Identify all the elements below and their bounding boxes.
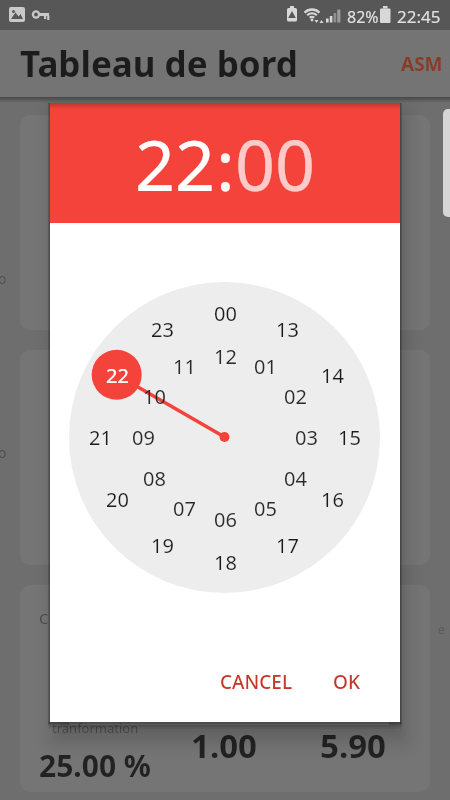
staticText: : — [216, 116, 235, 211]
staticText: 25.00 % — [39, 745, 151, 786]
staticText: e — [438, 621, 445, 637]
button[interactable] — [50, 103, 400, 223]
staticText: 19 — [151, 532, 174, 559]
staticText: 00 — [214, 300, 237, 327]
staticText: 09 — [132, 424, 155, 451]
staticText: 5.90 — [320, 723, 386, 768]
staticText: OK — [333, 669, 360, 695]
staticText: 05 — [254, 495, 277, 522]
staticText: 03 — [295, 424, 318, 451]
button[interactable]: OK — [311, 662, 381, 702]
staticText: 11 — [173, 353, 196, 380]
staticText: 15 — [338, 424, 361, 451]
staticText: o — [0, 443, 7, 462]
staticText: 04 — [284, 465, 307, 492]
staticText: 10 — [143, 383, 166, 410]
staticText: 07 — [173, 495, 196, 522]
staticText: 18 — [214, 549, 237, 576]
staticText: o — [0, 269, 7, 288]
staticText: 16 — [321, 486, 344, 513]
staticText: 02 — [284, 383, 307, 410]
staticText: 00 — [235, 116, 316, 211]
staticText: 82% — [347, 6, 379, 28]
staticText: 1.00 — [191, 723, 257, 768]
staticText: tranformation — [52, 719, 139, 737]
staticText: 13 — [276, 316, 299, 343]
staticText: 22 — [106, 362, 129, 389]
staticText: 22 — [135, 116, 216, 211]
staticText: 21 — [89, 424, 112, 451]
staticText: 14 — [321, 362, 344, 389]
staticText: 23 — [151, 316, 174, 343]
staticText: CANCEL — [220, 669, 293, 695]
staticText: 12 — [214, 343, 237, 370]
button[interactable]: ASM — [401, 51, 443, 77]
staticText: C — [39, 608, 49, 628]
staticText: 06 — [214, 506, 237, 533]
staticText: 17 — [276, 532, 299, 559]
staticText: 22:45 — [397, 5, 441, 28]
staticText: Tableau de bord — [20, 40, 298, 88]
staticText: 20 — [106, 486, 129, 513]
button[interactable] — [69, 282, 380, 593]
button[interactable]: CANCEL — [201, 662, 311, 702]
staticText: ASM — [401, 51, 443, 77]
staticText: 08 — [143, 465, 166, 492]
staticText: 01 — [254, 353, 277, 380]
